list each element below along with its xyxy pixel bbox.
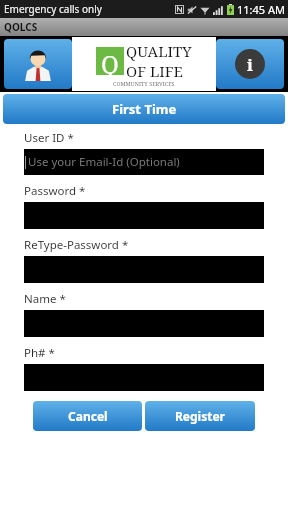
staticText: 11:45 AM	[237, 2, 285, 17]
button[interactable]: Information	[216, 39, 284, 89]
staticText: COMMUNITY SERVICES	[113, 80, 175, 87]
staticText: User ID *	[24, 130, 74, 146]
staticText: OF LIFE	[126, 61, 183, 81]
staticText: i	[247, 53, 253, 76]
staticText: Emergency calls only	[4, 2, 102, 16]
staticText: Password *	[24, 183, 86, 199]
button[interactable]: Register	[145, 401, 255, 431]
button[interactable]: Cancel	[33, 401, 142, 431]
staticText: Name *	[24, 291, 66, 307]
staticText: First Time	[112, 100, 177, 118]
button[interactable]: Profile	[4, 39, 72, 89]
staticText: Register	[175, 408, 225, 424]
button[interactable]: First Time	[3, 94, 285, 124]
staticText: Cancel	[68, 408, 108, 424]
staticText: ReType-Password *	[24, 237, 129, 253]
staticText: Use your Email-Id (Optional)	[28, 154, 180, 170]
staticText: QOLCS	[4, 20, 38, 34]
button[interactable]: Use your Email-Id (Optional)	[24, 149, 264, 175]
staticText: Q	[101, 47, 119, 75]
staticText: QUALITY	[126, 41, 192, 61]
staticText: Ph# *	[24, 345, 55, 361]
